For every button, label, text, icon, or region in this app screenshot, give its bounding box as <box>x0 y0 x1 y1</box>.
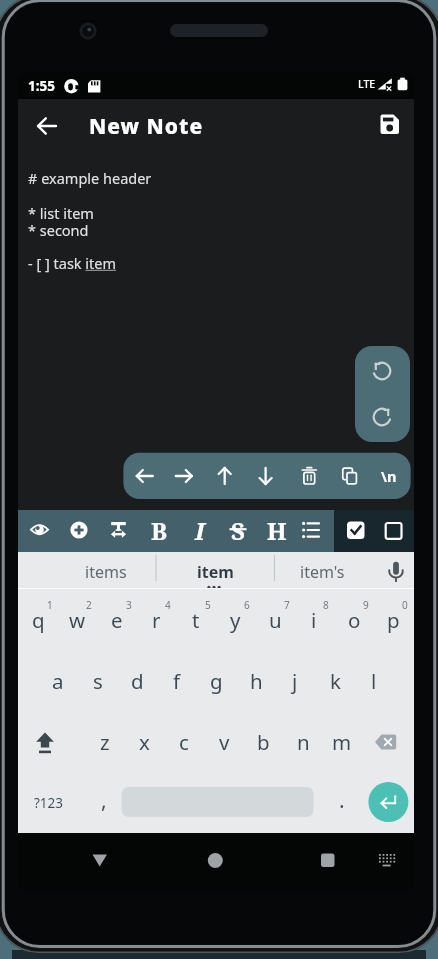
staticText: ?123 <box>34 794 64 812</box>
button[interactable] <box>356 348 409 394</box>
button[interactable] <box>100 510 138 552</box>
button[interactable] <box>366 840 406 880</box>
button[interactable] <box>332 453 368 499</box>
button[interactable] <box>336 510 374 552</box>
staticText: 1 <box>47 598 53 612</box>
button[interactable] <box>20 714 76 772</box>
button[interactable] <box>221 510 259 552</box>
button[interactable] <box>30 105 66 147</box>
staticText: g <box>210 667 223 695</box>
staticText: e <box>111 606 123 634</box>
button[interactable] <box>85 775 123 833</box>
button[interactable] <box>367 781 410 824</box>
button[interactable] <box>57 592 97 650</box>
button[interactable] <box>196 653 236 711</box>
staticText: 7 <box>284 598 290 612</box>
staticText: m <box>332 728 352 756</box>
button[interactable] <box>179 510 217 552</box>
button[interactable] <box>60 510 98 552</box>
button[interactable] <box>20 775 78 833</box>
button[interactable] <box>275 653 315 711</box>
staticText: 0 <box>402 598 408 612</box>
staticText: h <box>250 667 263 695</box>
button[interactable] <box>157 653 197 711</box>
button[interactable] <box>18 592 58 650</box>
button[interactable] <box>255 592 295 650</box>
button[interactable] <box>392 552 420 588</box>
button[interactable] <box>323 775 361 833</box>
button[interactable] <box>356 394 409 440</box>
staticText: , <box>101 786 107 815</box>
button[interactable] <box>323 714 363 772</box>
button[interactable] <box>207 453 243 499</box>
button[interactable] <box>307 840 347 880</box>
button[interactable] <box>80 840 120 880</box>
button[interactable] <box>117 653 157 711</box>
button[interactable] <box>291 453 327 499</box>
button[interactable] <box>125 714 165 772</box>
button[interactable] <box>373 592 413 650</box>
button[interactable] <box>215 592 255 650</box>
staticText: * list item <box>28 203 94 223</box>
staticText: y <box>230 606 241 634</box>
staticText: B <box>151 514 168 547</box>
staticText: 2 <box>86 598 92 612</box>
button[interactable] <box>122 775 314 833</box>
staticText: # example header <box>28 168 152 188</box>
button[interactable] <box>21 510 59 552</box>
staticText: 4 <box>165 598 171 612</box>
staticText: - [ ] task item <box>28 253 117 273</box>
button[interactable] <box>164 714 204 772</box>
staticText: c <box>179 728 189 756</box>
button[interactable] <box>204 714 244 772</box>
button[interactable] <box>136 592 176 650</box>
button[interactable] <box>127 453 163 499</box>
button[interactable] <box>315 653 355 711</box>
staticText: v <box>219 728 230 756</box>
staticText: 8 <box>323 598 329 612</box>
button[interactable] <box>166 453 202 499</box>
staticText: d <box>131 667 144 695</box>
button[interactable] <box>176 592 216 650</box>
button[interactable] <box>375 510 413 552</box>
button[interactable] <box>371 106 408 144</box>
staticText: S <box>231 514 245 547</box>
button[interactable] <box>248 453 284 499</box>
button[interactable] <box>334 592 374 650</box>
button[interactable] <box>139 510 177 552</box>
button[interactable] <box>354 653 394 711</box>
staticText: New Note <box>89 112 204 141</box>
staticText: 9 <box>363 598 369 612</box>
button[interactable] <box>272 552 377 588</box>
staticText: i <box>311 606 317 634</box>
button[interactable] <box>38 653 78 711</box>
button[interactable] <box>97 592 137 650</box>
button[interactable] <box>283 714 323 772</box>
button[interactable] <box>362 714 412 772</box>
staticText: j <box>292 667 298 695</box>
staticText: item <box>197 561 234 583</box>
staticText: t <box>192 606 200 634</box>
button[interactable] <box>292 510 330 552</box>
staticText: l <box>371 667 377 695</box>
staticText: LTE <box>358 77 376 91</box>
staticText: H <box>267 514 287 547</box>
staticText: w <box>69 606 86 634</box>
button[interactable] <box>236 653 276 711</box>
button[interactable] <box>85 714 125 772</box>
button[interactable] <box>55 552 160 588</box>
button[interactable] <box>165 552 270 588</box>
staticText: b <box>257 728 270 756</box>
button[interactable] <box>243 714 283 772</box>
staticText: u <box>269 606 282 634</box>
staticText: s <box>93 667 103 695</box>
button[interactable] <box>195 840 235 880</box>
button[interactable] <box>294 592 334 650</box>
staticText: z <box>100 728 110 756</box>
staticText: 5 <box>205 598 211 612</box>
staticText: I <box>195 514 205 547</box>
button[interactable] <box>78 653 118 711</box>
staticText: k <box>330 667 341 695</box>
button[interactable] <box>257 510 295 552</box>
button[interactable] <box>371 453 407 499</box>
